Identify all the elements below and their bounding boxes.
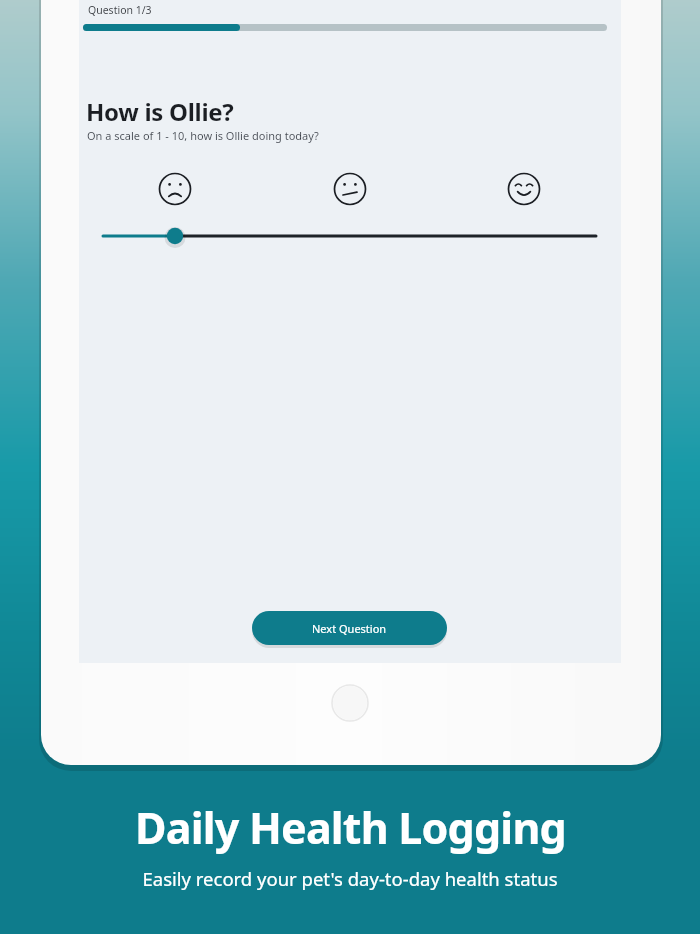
button[interactable]: Happy bbox=[508, 173, 540, 205]
button[interactable]: Next Question bbox=[252, 611, 447, 645]
button[interactable]: Home bbox=[332, 685, 368, 721]
button[interactable]: Health rating slider bbox=[95, 224, 605, 248]
staticText: Question 1/3 bbox=[88, 3, 152, 17]
button[interactable]: Neutral bbox=[334, 173, 366, 205]
staticText: On a scale of 1 - 10, how is Ollie doing… bbox=[87, 128, 319, 143]
staticText: How is Ollie? bbox=[86, 95, 234, 128]
staticText: Next Question bbox=[312, 621, 387, 636]
staticText: Easily record your pet's day-to-day heal… bbox=[142, 866, 558, 891]
staticText: Daily Health Logging bbox=[135, 798, 566, 857]
button[interactable]: Sad bbox=[159, 173, 191, 205]
